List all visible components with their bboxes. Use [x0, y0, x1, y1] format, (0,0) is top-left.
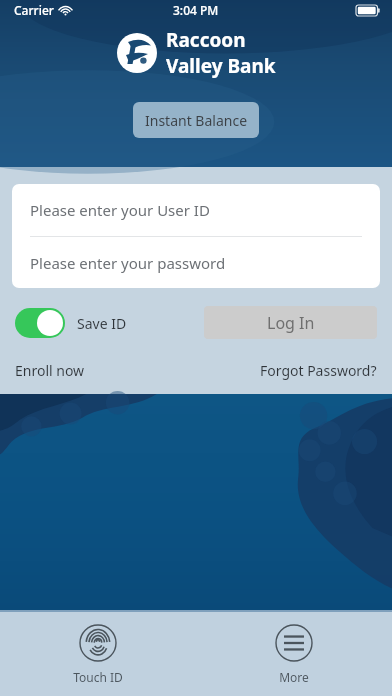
- staticText: Touch ID: [73, 669, 123, 685]
- button[interactable]: Please enter your password: [12, 237, 380, 288]
- staticText: Please enter your password: [30, 253, 226, 273]
- staticText: 3:04 PM: [173, 2, 219, 18]
- button[interactable]: More: [196, 616, 392, 693]
- staticText: Enroll now: [15, 361, 85, 380]
- button[interactable]: Save ID: [15, 308, 127, 338]
- button[interactable]: Please enter your User ID: [12, 184, 380, 236]
- staticText: Carrier: [14, 2, 54, 18]
- button[interactable]: Enroll now: [15, 361, 85, 380]
- staticText: Log In: [267, 312, 315, 334]
- button[interactable]: Instant Balance: [133, 102, 259, 138]
- staticText: Valley Bank: [166, 53, 276, 79]
- staticText: Save ID: [77, 314, 127, 333]
- staticText: Instant Balance: [145, 111, 248, 130]
- button[interactable]: Log In: [204, 306, 377, 339]
- staticText: Please enter your User ID: [30, 200, 210, 220]
- staticText: More: [279, 669, 309, 685]
- staticText: Raccoon: [166, 27, 246, 53]
- button[interactable]: Touch ID: [0, 616, 196, 693]
- button[interactable]: Forgot Password?: [260, 361, 377, 380]
- staticText: Forgot Password?: [260, 361, 377, 380]
